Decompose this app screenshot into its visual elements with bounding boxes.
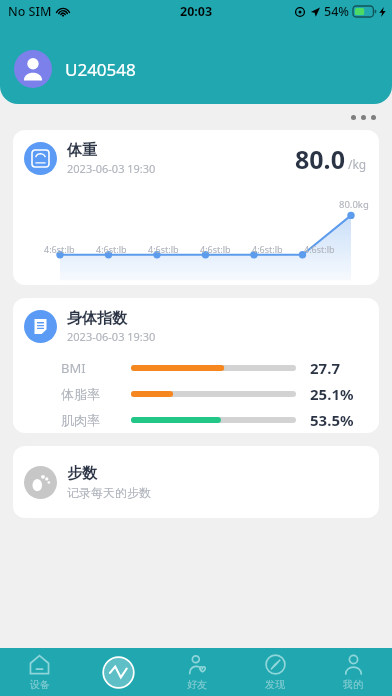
staticText: 发现: [265, 678, 285, 691]
button[interactable]: 好友: [158, 648, 236, 696]
staticText: 肌肉率: [61, 412, 100, 428]
staticText: 53.5%: [310, 410, 354, 430]
button[interactable]: U240548: [14, 50, 136, 88]
staticText: 4:6st:lb: [304, 243, 335, 255]
button[interactable]: 身体指数: [13, 298, 379, 433]
staticText: 4:6st:lb: [148, 243, 179, 255]
staticText: No SIM: [8, 3, 52, 20]
button[interactable]: 步数: [13, 446, 379, 518]
staticText: /kg: [348, 156, 367, 172]
staticText: 20:03: [180, 3, 213, 20]
staticText: BMI: [61, 359, 86, 377]
staticText: U240548: [65, 58, 136, 81]
staticText: 设备: [30, 678, 50, 691]
staticText: 2023-06-03 19:30: [67, 329, 156, 344]
button[interactable]: 我的: [314, 648, 392, 696]
staticText: 54%: [324, 3, 349, 20]
button[interactable]: More options: [347, 111, 380, 124]
staticText: 我的: [343, 678, 363, 691]
staticText: 体重: [67, 141, 97, 160]
button[interactable]: 体重: [13, 130, 379, 285]
staticText: 体脂率: [61, 386, 100, 402]
staticText: 27.7: [310, 358, 340, 378]
staticText: 25.1%: [310, 384, 354, 404]
button[interactable]: 设备: [0, 648, 79, 696]
staticText: 好友: [187, 678, 207, 691]
staticText: 身体指数: [67, 309, 127, 328]
button[interactable]: 发现: [236, 648, 314, 696]
staticText: 4:6st:lb: [96, 243, 127, 255]
staticText: 2023-06-03 19:30: [67, 161, 156, 176]
staticText: 4:6st:lb: [252, 243, 283, 255]
staticText: 记录每天的步数: [67, 485, 151, 500]
staticText: 80.0kg: [339, 198, 369, 211]
staticText: 步数: [67, 464, 97, 483]
button[interactable]: 数据: [79, 648, 158, 696]
staticText: 80.0: [295, 142, 345, 176]
staticText: 4:6st:lb: [200, 243, 231, 255]
staticText: 4:6st:lb: [44, 243, 75, 255]
